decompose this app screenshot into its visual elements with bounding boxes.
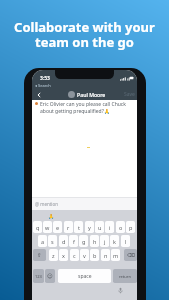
staticText: ⌫ [127, 252, 135, 258]
button[interactable]: l [121, 235, 130, 247]
staticText: @ mention [35, 201, 59, 207]
button[interactable]: w [43, 221, 52, 233]
button[interactable]: a [38, 235, 47, 247]
staticText: d [62, 238, 66, 245]
staticText: y [88, 224, 91, 231]
staticText: t [78, 224, 80, 231]
button[interactable]: i [105, 221, 114, 233]
staticText: ⇧ [37, 252, 42, 258]
staticText: u [98, 224, 102, 231]
staticText: ☺ [47, 273, 53, 279]
staticText: g [82, 238, 86, 245]
button[interactable]: m [111, 249, 120, 261]
staticText: return [119, 274, 131, 279]
button[interactable]: n [101, 249, 110, 261]
button[interactable]: x [59, 249, 68, 261]
staticText: 🙏 [48, 213, 55, 219]
button[interactable]: q [33, 221, 42, 233]
button[interactable]: Delete [124, 249, 137, 261]
button[interactable]: d [59, 235, 68, 247]
button[interactable]: t [74, 221, 83, 233]
button[interactable]: h [90, 235, 99, 247]
staticText: h [93, 238, 97, 245]
button[interactable]: Numbers [33, 269, 44, 283]
staticText: s [51, 238, 54, 245]
staticText: ◂ Search [35, 83, 51, 88]
staticText: j [104, 238, 106, 245]
button[interactable]: Back [34, 90, 43, 99]
staticText: a [41, 238, 45, 245]
button[interactable]: f [69, 235, 78, 247]
button[interactable]: b [90, 249, 99, 261]
staticText: l [125, 238, 127, 245]
button[interactable]: u [95, 221, 104, 233]
button[interactable]: c [70, 249, 79, 261]
button[interactable]: Emoji [45, 269, 55, 283]
staticText: space [78, 273, 92, 280]
button[interactable]: j [100, 235, 109, 247]
button[interactable]: z [49, 249, 58, 261]
button[interactable]: e [53, 221, 62, 233]
staticText: q [36, 224, 40, 231]
staticText: e [56, 224, 60, 231]
button[interactable]: v [80, 249, 89, 261]
staticText: b [93, 252, 97, 259]
button[interactable]: g [79, 235, 88, 247]
staticText: c [73, 252, 76, 259]
button[interactable]: s [48, 235, 57, 247]
staticText: Collaborate with your team on the go [0, 18, 169, 51]
staticText: Paul Moore [77, 91, 106, 98]
button[interactable]: space [58, 269, 111, 283]
staticText: n [104, 252, 108, 259]
button[interactable]: Save [124, 91, 135, 98]
staticText: p [129, 224, 133, 231]
button[interactable]: r [64, 221, 73, 233]
staticText: f [73, 238, 75, 245]
button[interactable]: Return [113, 269, 137, 283]
button[interactable]: p [126, 221, 135, 233]
staticText: r [67, 224, 70, 231]
staticText: m [113, 252, 119, 259]
staticText: k [113, 238, 116, 245]
staticText: x [62, 252, 65, 259]
staticText: 3:53 [40, 75, 50, 82]
staticText: 123 [35, 274, 42, 279]
staticText: Eric Olivier can you please call Chuck a… [40, 101, 126, 114]
staticText: o [119, 224, 123, 231]
staticText: i [109, 224, 111, 231]
button[interactable]: k [110, 235, 119, 247]
button[interactable]: Shift [33, 249, 46, 261]
button[interactable]: o [116, 221, 125, 233]
button[interactable]: Dictate [117, 287, 124, 294]
staticText: z [52, 252, 55, 259]
staticText: v [83, 252, 86, 259]
staticText: w [45, 224, 50, 231]
button[interactable]: y [85, 221, 94, 233]
button[interactable]: Paul Moore [68, 91, 106, 98]
